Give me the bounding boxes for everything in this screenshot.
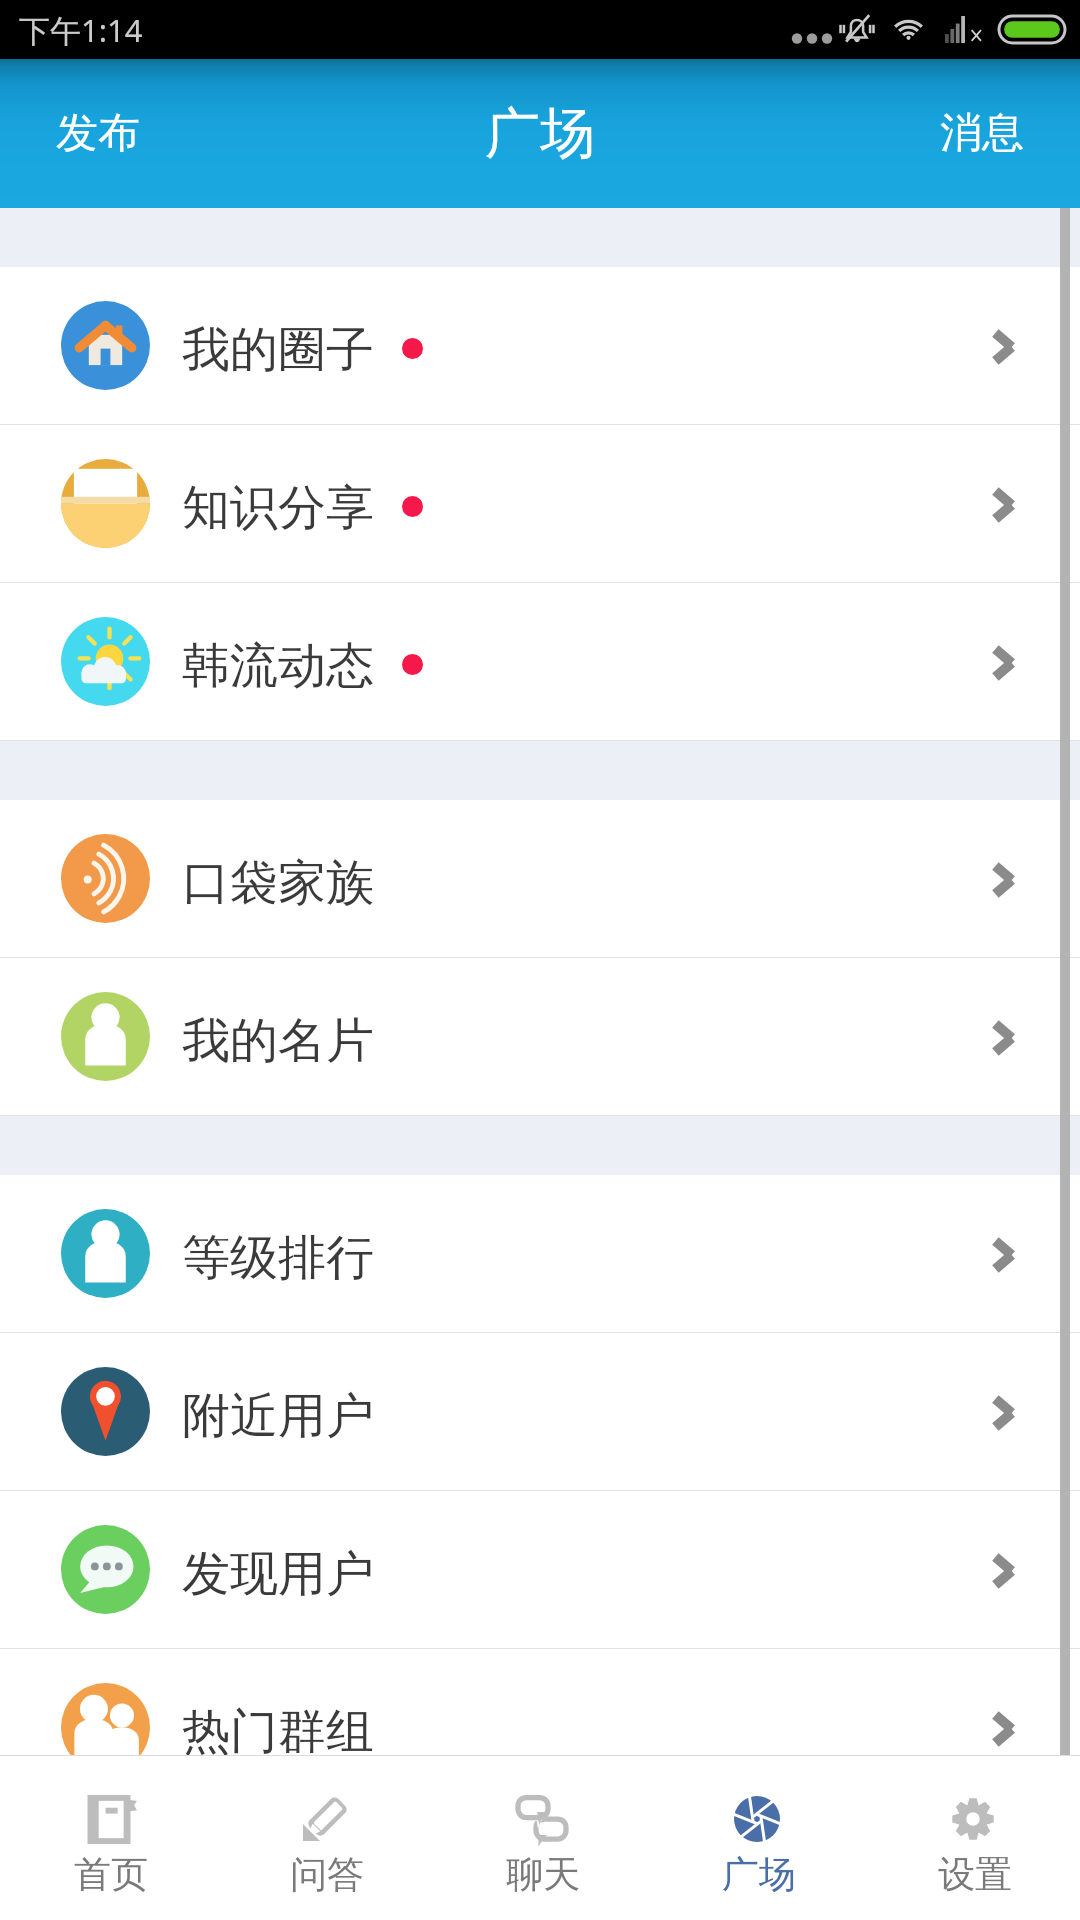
button[interactable]: 设置: [864, 1756, 1080, 1920]
button[interactable]: 我的圈子: [0, 267, 1080, 424]
button[interactable]: 首页: [0, 1756, 216, 1920]
staticText: 我的圈子: [182, 320, 374, 380]
button[interactable]: 问答: [216, 1756, 432, 1920]
staticText: 我的名片: [182, 1011, 374, 1071]
staticText: 聊天: [506, 1851, 580, 1898]
staticText: 广场: [485, 99, 595, 168]
staticText: 问答: [290, 1851, 364, 1898]
button[interactable]: 广场: [648, 1756, 864, 1920]
staticText: 口袋家族: [182, 853, 374, 913]
staticText: 下午1:14: [19, 9, 143, 51]
button[interactable]: 附近用户: [0, 1333, 1080, 1490]
button[interactable]: 热门群组: [0, 1649, 1080, 1755]
staticText: 附近用户: [182, 1386, 374, 1446]
button[interactable]: 口袋家族: [0, 800, 1080, 957]
staticText: 韩流动态: [182, 636, 374, 696]
button[interactable]: 知识分享: [0, 425, 1080, 582]
button[interactable]: 发现用户: [0, 1491, 1080, 1648]
button[interactable]: 消息: [884, 77, 1080, 190]
button[interactable]: 韩流动态: [0, 583, 1080, 740]
staticText: 发布: [56, 107, 140, 160]
staticText: 设置: [938, 1851, 1012, 1898]
staticText: 首页: [74, 1851, 148, 1898]
staticText: 广场: [722, 1851, 796, 1898]
staticText: 知识分享: [182, 478, 374, 538]
button[interactable]: 聊天: [432, 1756, 648, 1920]
staticText: 等级排行: [182, 1228, 374, 1288]
button[interactable]: 发布: [0, 77, 196, 190]
staticText: 消息: [940, 107, 1024, 160]
staticText: 热门群组: [182, 1702, 374, 1755]
button[interactable]: 等级排行: [0, 1175, 1080, 1332]
staticText: 发现用户: [182, 1544, 374, 1604]
button[interactable]: 我的名片: [0, 958, 1080, 1115]
